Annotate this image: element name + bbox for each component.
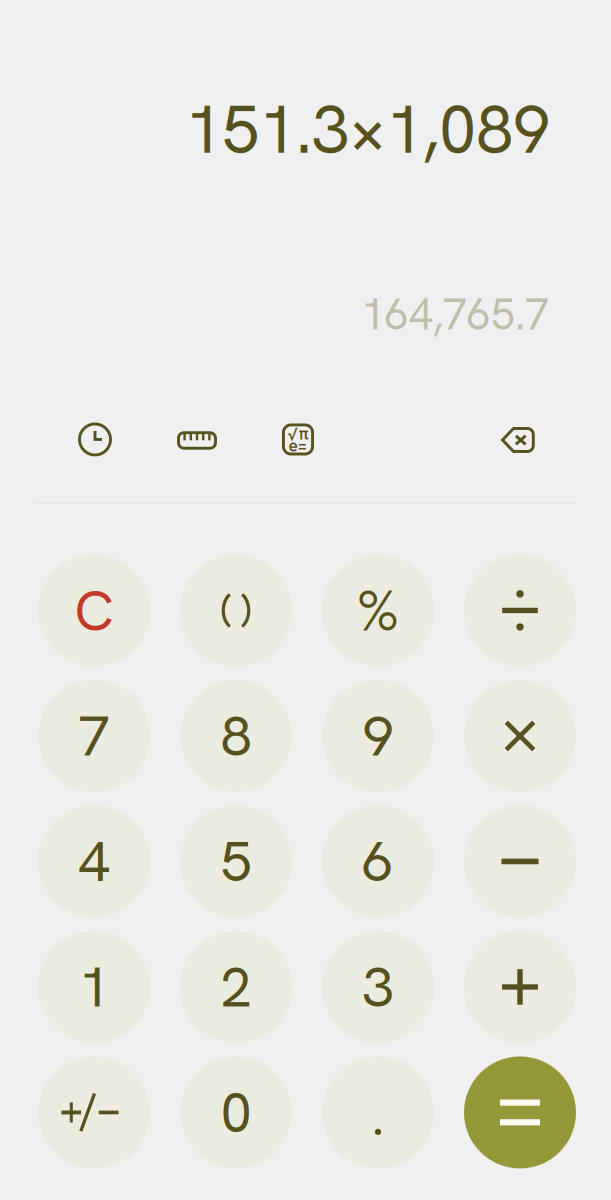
staticText: e=: [288, 434, 307, 457]
staticText: 5: [220, 825, 251, 898]
button[interactable]: Unit converter: [177, 420, 217, 458]
button[interactable]: 1: [38, 931, 150, 1043]
button[interactable]: 9: [322, 680, 434, 792]
staticText: √π: [287, 422, 308, 445]
staticText: 7: [78, 699, 109, 772]
button[interactable]: Scientific functions: [282, 421, 314, 457]
staticText: 1: [78, 950, 109, 1023]
button[interactable]: %: [322, 554, 434, 666]
button[interactable]: 4: [38, 805, 150, 917]
button[interactable]: Equals: [464, 1056, 576, 1168]
staticText: 3: [362, 950, 393, 1023]
button[interactable]: Divide: [464, 554, 576, 666]
button[interactable]: 8: [180, 680, 292, 792]
staticText: 4: [78, 825, 109, 898]
button[interactable]: History: [78, 421, 112, 457]
staticText: 0: [220, 1076, 251, 1149]
staticText: 8: [220, 699, 251, 772]
button[interactable]: 7: [38, 680, 150, 792]
staticText: 151.3×1,089: [185, 86, 550, 173]
staticText: C: [74, 574, 113, 647]
button[interactable]: Multiply: [464, 680, 576, 792]
button[interactable]: Minus: [464, 805, 576, 917]
button[interactable]: Decimal point: [322, 1056, 434, 1168]
staticText: %: [356, 573, 399, 648]
button[interactable]: C: [38, 554, 150, 666]
staticText: 164,765.7: [361, 287, 549, 342]
button[interactable]: 6: [322, 805, 434, 917]
button[interactable]: Plus: [464, 931, 576, 1043]
button[interactable]: Delete: [501, 421, 535, 458]
button[interactable]: Parentheses: [180, 554, 292, 666]
staticText: 9: [362, 699, 393, 772]
staticText: 6: [362, 825, 393, 898]
button[interactable]: 3: [322, 931, 434, 1043]
button[interactable]: 0: [180, 1056, 292, 1168]
button[interactable]: 2: [180, 931, 292, 1043]
button[interactable]: Toggle sign: [38, 1056, 150, 1168]
button[interactable]: 5: [180, 805, 292, 917]
staticText: 2: [220, 950, 251, 1023]
